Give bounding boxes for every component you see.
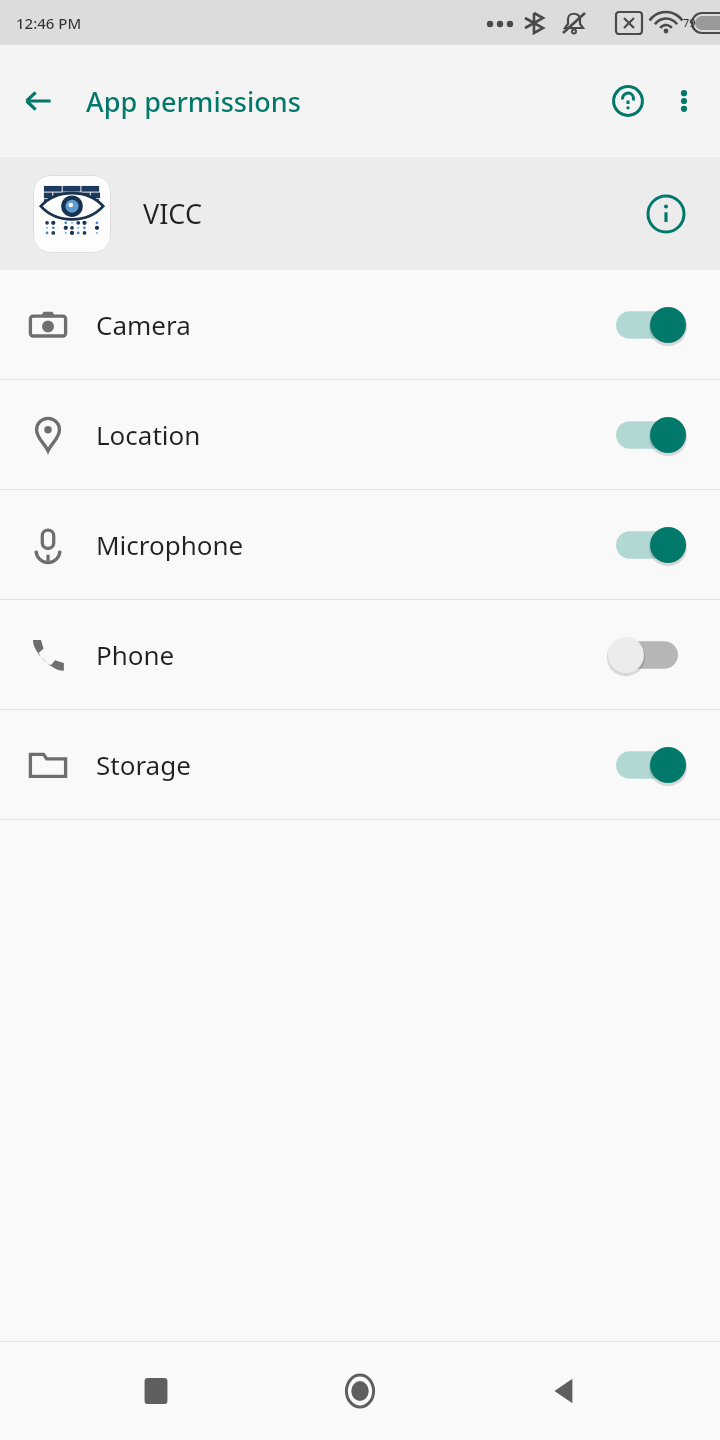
button[interactable]: VICC bbox=[0, 157, 720, 270]
staticText: Camera bbox=[96, 307, 191, 342]
button[interactable]: Recent apps bbox=[121, 1356, 191, 1426]
button[interactable]: Location bbox=[0, 380, 720, 489]
button[interactable]: Storage bbox=[0, 710, 720, 819]
button[interactable]: Microphone bbox=[0, 490, 720, 599]
button[interactable]: Help bbox=[600, 73, 656, 129]
button[interactable]: Phone permission toggle bbox=[604, 625, 690, 685]
button[interactable]: More options bbox=[656, 73, 712, 129]
staticText: Phone bbox=[96, 637, 175, 672]
staticText: App permissions bbox=[86, 83, 301, 120]
button[interactable]: Back bbox=[12, 75, 64, 127]
button[interactable]: Home bbox=[325, 1356, 395, 1426]
button[interactable]: Back bbox=[529, 1356, 599, 1426]
staticText: Microphone bbox=[96, 527, 244, 562]
button[interactable]: App info bbox=[638, 186, 694, 242]
staticText: VICC bbox=[143, 195, 202, 232]
staticText: 12:46 PM bbox=[16, 13, 82, 33]
button[interactable]: Microphone permission toggle bbox=[604, 515, 690, 575]
button[interactable]: Phone bbox=[0, 600, 720, 709]
staticText: 79 bbox=[683, 15, 696, 30]
staticText: Storage bbox=[96, 747, 191, 782]
button[interactable]: Storage permission toggle bbox=[604, 735, 690, 795]
staticText: Location bbox=[96, 417, 201, 452]
button[interactable]: Location permission toggle bbox=[604, 405, 690, 465]
button[interactable]: Camera permission toggle bbox=[604, 295, 690, 355]
button[interactable]: Camera bbox=[0, 270, 720, 379]
